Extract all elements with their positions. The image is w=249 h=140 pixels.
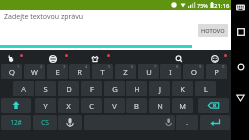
- button[interactable]: O: [183, 64, 204, 79]
- button[interactable]: S: [35, 81, 56, 96]
- button[interactable]: T: [92, 64, 113, 79]
- staticText: O: [191, 67, 197, 77]
- staticText: .: [186, 118, 188, 128]
- staticText: CS: [41, 118, 49, 127]
- staticText: 4: [85, 64, 88, 70]
- staticText: H: [134, 84, 140, 94]
- staticText: M: [179, 101, 186, 111]
- staticText: L: [204, 84, 208, 94]
- button[interactable]: M: [172, 98, 193, 113]
- staticText: D: [66, 84, 72, 94]
- button[interactable]: P: [206, 64, 227, 79]
- button[interactable]: Q: [1, 64, 22, 79]
- button[interactable]: E: [47, 64, 68, 79]
- staticText: R: [77, 67, 82, 77]
- staticText: F: [90, 84, 94, 94]
- button[interactable]: D: [58, 81, 79, 96]
- button[interactable]: Shift: [1, 98, 31, 113]
- staticText: 9: [199, 64, 202, 70]
- staticText: E: [55, 67, 60, 77]
- button[interactable]: B: [126, 98, 147, 113]
- button[interactable]: Suggestions: [6, 54, 16, 64]
- button[interactable]: I: [160, 64, 181, 79]
- button[interactable]: U: [138, 64, 159, 79]
- staticText: 21:16: [214, 2, 230, 10]
- button[interactable]: Back: [236, 94, 245, 102]
- button[interactable]: R: [69, 64, 90, 79]
- button[interactable]: Space: [84, 115, 175, 130]
- staticText: Q: [9, 67, 15, 77]
- button[interactable]: Search: [174, 54, 184, 64]
- staticText: A: [21, 84, 26, 94]
- staticText: 5: [108, 64, 111, 70]
- staticText: V: [112, 101, 117, 111]
- button[interactable]: 12#: [1, 115, 31, 130]
- staticText: U: [146, 67, 152, 77]
- button[interactable]: H: [126, 81, 147, 96]
- staticText: 12#: [10, 118, 22, 127]
- button[interactable]: W: [24, 64, 45, 79]
- staticText: N: [157, 101, 163, 111]
- button[interactable]: Enter: [200, 115, 230, 130]
- staticText: K: [180, 84, 185, 94]
- staticText: 2: [40, 64, 43, 70]
- button[interactable]: Themes: [90, 54, 100, 64]
- button[interactable]: A: [13, 81, 34, 96]
- staticText: Y: [43, 101, 48, 111]
- button[interactable]: Home: [237, 63, 245, 71]
- staticText: G: [112, 84, 118, 94]
- staticText: 3: [63, 64, 66, 70]
- staticText: W: [31, 67, 38, 77]
- staticText: 1: [17, 64, 20, 70]
- staticText: 75%: [197, 2, 208, 9]
- button[interactable]: F: [81, 81, 102, 96]
- button[interactable]: C: [81, 98, 102, 113]
- staticText: X: [66, 101, 71, 111]
- button[interactable]: V: [104, 98, 125, 113]
- staticText: 8: [176, 64, 179, 70]
- staticText: Zadejte textovou zprávu: [4, 12, 84, 22]
- button[interactable]: Voice input: [58, 115, 82, 130]
- button[interactable]: CS: [33, 115, 57, 130]
- button[interactable]: Language: [48, 54, 58, 64]
- button[interactable]: Hide keyboard: [236, 4, 245, 11]
- button[interactable]: K: [172, 81, 193, 96]
- button[interactable]: X: [58, 98, 79, 113]
- staticText: T: [100, 67, 105, 77]
- button[interactable]: HOTOVO: [198, 24, 228, 37]
- staticText: C: [89, 101, 94, 111]
- button[interactable]: .: [176, 115, 198, 130]
- staticText: HOTOVO: [201, 27, 225, 35]
- button[interactable]: G: [104, 81, 125, 96]
- staticText: 7: [154, 64, 157, 70]
- button[interactable]: L: [195, 81, 216, 96]
- staticText: S: [43, 84, 48, 94]
- button[interactable]: N: [149, 98, 170, 113]
- button[interactable]: Y: [35, 98, 56, 113]
- button[interactable]: J: [149, 81, 170, 96]
- staticText: Z: [123, 67, 128, 77]
- staticText: B: [134, 101, 139, 111]
- button[interactable]: Emoji: [210, 54, 220, 64]
- staticText: P: [214, 67, 219, 77]
- button[interactable]: Backspace: [198, 98, 229, 113]
- staticText: 6: [131, 64, 134, 70]
- staticText: I: [169, 67, 172, 77]
- staticText: J: [159, 84, 161, 94]
- button[interactable]: Recent apps: [237, 28, 245, 36]
- button[interactable]: Z: [115, 64, 136, 79]
- staticText: 0: [222, 64, 225, 70]
